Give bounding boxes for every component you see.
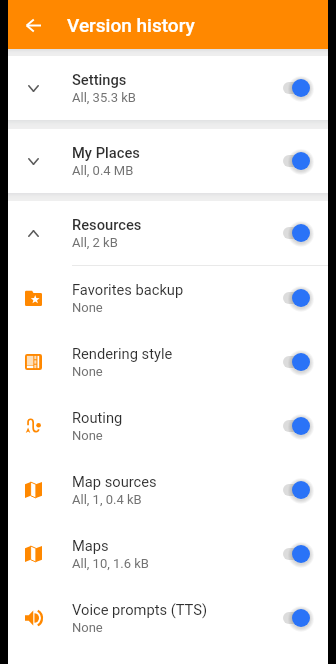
button[interactable]: Settings	[8, 56, 328, 120]
button[interactable]: Toggle	[282, 145, 320, 177]
button[interactable]: Voice prompts (TTS)	[8, 586, 328, 650]
staticText: Maps	[72, 537, 109, 554]
staticText: All, 0.4 MB	[72, 163, 134, 178]
staticText: Version history	[67, 14, 195, 36]
button[interactable]: Toggle	[282, 538, 320, 570]
staticText: None	[72, 620, 103, 635]
staticText: Resources	[72, 216, 142, 233]
staticText: Rendering style	[72, 345, 173, 362]
staticText: All, 1, 0.4 kB	[72, 492, 142, 507]
staticText: Voice prompts (TTS)	[72, 601, 208, 618]
staticText: My Places	[72, 144, 140, 161]
button[interactable]: Toggle	[282, 282, 320, 314]
button[interactable]: Rendering style	[8, 330, 328, 394]
button[interactable]: Toggle	[282, 346, 320, 378]
button[interactable]: Map sources	[8, 458, 328, 522]
button[interactable]: Resources	[8, 201, 328, 265]
button[interactable]: Toggle	[282, 410, 320, 442]
staticText: Routing	[72, 409, 123, 426]
staticText: None	[72, 428, 103, 443]
staticText: None	[72, 300, 103, 315]
button[interactable]: Toggle	[282, 72, 320, 104]
button[interactable]: My Places	[8, 129, 328, 193]
staticText: None	[72, 364, 103, 379]
staticText: All, 10, 1.6 kB	[72, 556, 149, 571]
staticText: Favorites backup	[72, 281, 184, 298]
staticText: Map sources	[72, 473, 157, 490]
button[interactable]: Routing	[8, 394, 328, 458]
button[interactable]: Maps	[8, 522, 328, 586]
staticText: All, 35.3 kB	[72, 90, 136, 105]
button[interactable]: Favorites backup	[8, 266, 328, 330]
button[interactable]: Toggle	[282, 474, 320, 506]
button[interactable]: Toggle	[282, 602, 320, 634]
staticText: All, 2 kB	[72, 235, 118, 250]
button[interactable]: Back	[9, 1, 57, 49]
staticText: Settings	[72, 71, 127, 88]
button[interactable]: Toggle	[282, 217, 320, 249]
